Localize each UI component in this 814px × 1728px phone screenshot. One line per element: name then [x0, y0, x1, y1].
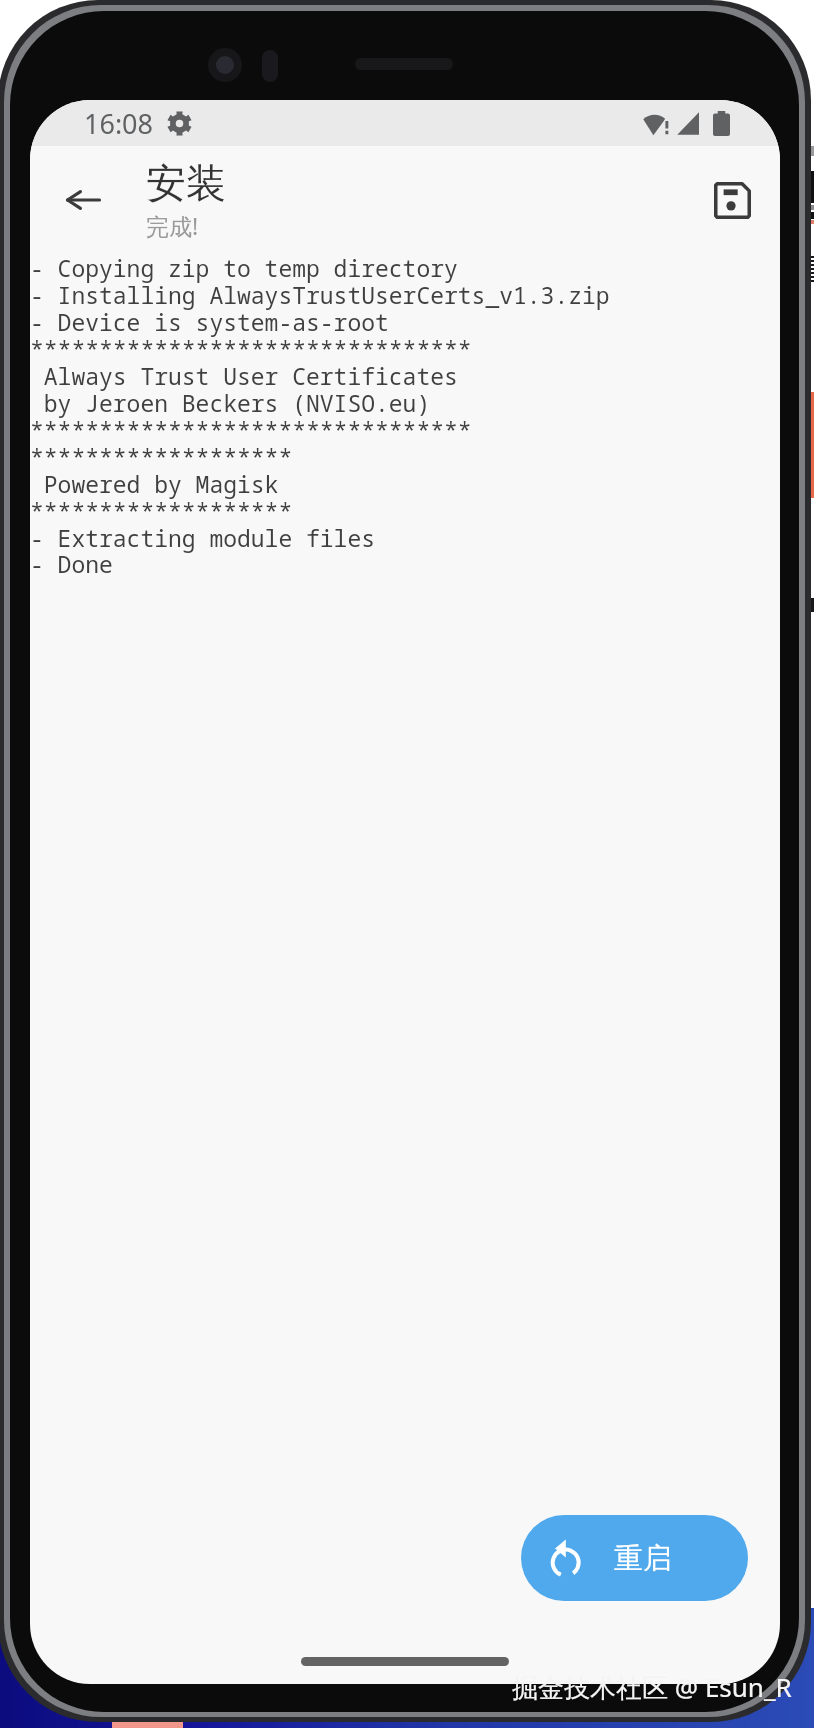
staticText: Powered by Magisk — [30, 468, 279, 499]
staticText: ******************************** — [30, 333, 472, 364]
staticText: 重启 — [614, 1540, 672, 1577]
staticText: 掘金技术社区 @ Esun_R — [512, 1669, 792, 1705]
button[interactable]: Back — [50, 167, 116, 233]
staticText: ******************************** — [30, 414, 472, 445]
staticText: 安装 — [146, 158, 226, 208]
staticText: - Copying zip to temp directory — [30, 252, 458, 283]
staticText: 完成! — [146, 210, 199, 241]
staticText: ******************* — [30, 495, 293, 526]
button[interactable]: Save — [690, 158, 774, 242]
button[interactable]: 重启 — [521, 1515, 748, 1601]
staticText: by Jeroen Beckers (NVISO.eu) — [30, 387, 431, 418]
staticText: - Extracting module files — [30, 522, 375, 553]
staticText: ******************* — [30, 441, 293, 472]
staticText: - Installing AlwaysTrustUserCerts_v1.3.z… — [30, 279, 610, 310]
staticText: - Device is system-as-root — [30, 306, 389, 337]
staticText: - Done — [30, 548, 113, 579]
staticText: 16:08 — [84, 105, 154, 142]
staticText: Always Trust User Certificates — [30, 360, 458, 391]
